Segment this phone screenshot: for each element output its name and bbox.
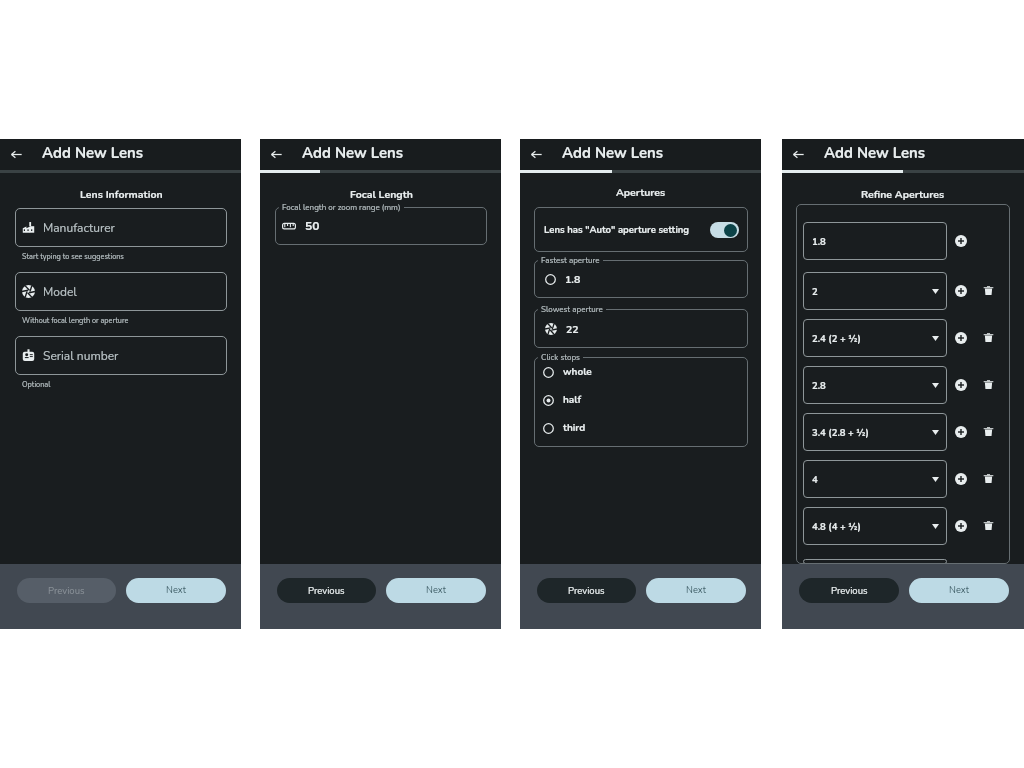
staticText: whole <box>563 365 592 379</box>
staticText: Click stops <box>541 352 580 363</box>
staticText: Lens has "Auto" aperture setting <box>544 223 690 236</box>
staticText: Start typing to see suggestions <box>22 252 124 262</box>
staticText: 4.8 (4 + ½) <box>812 520 861 533</box>
button[interactable]: Delete aperture <box>978 327 999 348</box>
staticText: Lens Information <box>80 187 163 201</box>
button[interactable]: Model <box>15 272 227 311</box>
staticText: 4 <box>812 473 818 486</box>
button[interactable]: Back <box>260 139 292 170</box>
button[interactable]: half <box>543 386 748 414</box>
button[interactable]: 3.4 (2.8 + ½) <box>803 413 947 451</box>
button[interactable]: Add aperture <box>950 230 971 251</box>
staticText: Optional <box>22 380 51 390</box>
staticText: Next <box>686 584 706 597</box>
button[interactable]: Delete aperture <box>978 515 999 536</box>
button[interactable]: Serial number <box>15 336 227 375</box>
button[interactable]: Delete aperture <box>978 468 999 489</box>
button[interactable]: whole <box>543 358 748 386</box>
button[interactable]: Next <box>126 578 226 603</box>
button[interactable]: third <box>543 414 748 442</box>
button[interactable]: Previous <box>537 578 636 603</box>
staticText: Next <box>166 584 186 597</box>
staticText: 2.4 (2 + ½) <box>812 332 861 345</box>
button[interactable]: Back <box>520 139 552 170</box>
button[interactable]: 2 <box>803 272 947 310</box>
button[interactable]: Back <box>782 139 814 170</box>
staticText: Focal length or zoom range (mm) <box>282 202 401 213</box>
staticText: Serial number <box>43 348 119 364</box>
staticText: Add New Lens <box>824 143 926 163</box>
staticText: Previous <box>308 584 345 597</box>
button[interactable]: Add aperture <box>950 515 971 536</box>
staticText: half <box>563 393 582 407</box>
staticText: third <box>563 421 586 435</box>
staticText: Refine Apertures <box>861 187 945 201</box>
staticText: 3.4 (2.8 + ½) <box>812 426 869 439</box>
button[interactable]: 2.8 <box>803 366 947 404</box>
staticText: Previous <box>48 584 85 597</box>
button[interactable]: 4 <box>803 460 947 498</box>
staticText: Previous <box>831 584 868 597</box>
staticText: Fastest aperture <box>541 255 600 266</box>
button[interactable]: Back <box>0 139 32 170</box>
staticText: 1.8 <box>812 235 826 248</box>
button[interactable]: Aperture 5.6 <box>803 559 947 564</box>
button[interactable]: Delete aperture <box>978 374 999 395</box>
staticText: Add New Lens <box>42 143 144 163</box>
button[interactable]: Add aperture <box>950 374 971 395</box>
button[interactable]: 1.8 <box>803 222 947 260</box>
staticText: Next <box>426 584 446 597</box>
button[interactable]: Previous <box>277 578 376 603</box>
staticText: Manufacturer <box>43 220 115 236</box>
staticText: Slowest aperture <box>541 304 603 315</box>
button[interactable]: Add aperture <box>950 468 971 489</box>
staticText: Without focal length or aperture <box>22 316 129 326</box>
button[interactable]: Next <box>646 578 746 603</box>
button[interactable]: Add aperture <box>950 327 971 348</box>
button[interactable]: 4.8 (4 + ½) <box>803 507 947 545</box>
staticText: 50 <box>305 218 320 234</box>
staticText: 2.8 <box>812 379 826 392</box>
button[interactable]: Lens has "Auto" aperture setting <box>534 207 748 252</box>
button[interactable]: 2.4 (2 + ½) <box>803 319 947 357</box>
button[interactable]: Manufacturer <box>15 208 227 247</box>
staticText: 2 <box>812 285 818 298</box>
staticText: Apertures <box>616 185 666 199</box>
staticText: Next <box>949 584 969 597</box>
staticText: Previous <box>568 584 605 597</box>
button[interactable]: Previous <box>17 578 116 603</box>
staticText: 22 <box>566 322 579 336</box>
staticText: Add New Lens <box>562 143 664 163</box>
button[interactable]: Next <box>386 578 486 603</box>
staticText: Add New Lens <box>302 143 404 163</box>
button[interactable]: Auto aperture toggle <box>710 222 739 238</box>
button[interactable]: Delete aperture <box>978 280 999 301</box>
button[interactable]: Next <box>909 578 1009 603</box>
button[interactable]: Previous <box>799 578 899 603</box>
staticText: 1.8 <box>565 272 581 286</box>
button[interactable]: Delete aperture <box>978 421 999 442</box>
staticText: Focal Length <box>350 187 413 201</box>
button[interactable]: Add aperture <box>950 421 971 442</box>
staticText: Model <box>43 284 77 300</box>
button[interactable]: Add aperture <box>950 280 971 301</box>
